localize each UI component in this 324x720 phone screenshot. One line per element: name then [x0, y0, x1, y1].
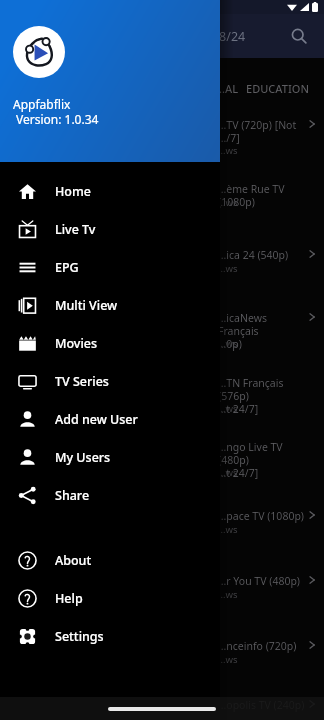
button[interactable]: …pace TV (1080p): [213, 508, 324, 552]
staticText: TV Series: [55, 373, 109, 390]
staticText: ...AL: [216, 81, 239, 96]
staticText: …ws: [218, 337, 238, 350]
staticText: …ws: [218, 144, 238, 157]
staticText: …icaNews Français …0p): [218, 311, 306, 351]
staticText: …TN Français (576p) …t 24/7]: [218, 376, 306, 416]
button[interactable]: About: [0, 541, 220, 579]
button[interactable]: …ngo Live TV (480p) …t 24/7]: [213, 439, 324, 483]
staticText: …ngo Live TV (480p) …t 24/7]: [218, 440, 306, 480]
staticText: …r You TV (480p): [218, 574, 306, 588]
button[interactable]: …opolis TV (240p): [213, 697, 324, 720]
staticText: …ème Rue TV (1080p): [218, 182, 306, 209]
staticText: Movies: [55, 335, 98, 352]
button[interactable]: Help: [0, 579, 220, 617]
staticText: …ws: [218, 653, 238, 666]
button[interactable]: …TV (720p) [Not …/7]: [213, 117, 324, 161]
staticText: …ws: [218, 196, 238, 209]
button[interactable]: EPG: [0, 248, 220, 286]
staticText: …pace TV (1080p): [218, 509, 306, 523]
staticText: …ws: [218, 402, 238, 415]
button[interactable]: Multi View: [0, 286, 220, 324]
staticText: Help: [55, 590, 83, 607]
button[interactable]: My Users: [0, 438, 220, 476]
button[interactable]: …ica 24 (540p): [213, 247, 324, 291]
staticText: Add new User: [55, 411, 138, 428]
staticText: 18/08/24: [193, 28, 246, 45]
staticText: …ws: [218, 523, 238, 536]
staticText: Home: [55, 183, 92, 200]
staticText: Settings: [55, 628, 104, 645]
staticText: About: [55, 552, 92, 569]
staticText: AppFab Flix: [81, 26, 164, 46]
staticText: Version: 1.0.34: [16, 111, 99, 127]
staticText: Share: [55, 487, 90, 504]
button[interactable]: Settings: [0, 617, 220, 655]
staticText: My Users: [55, 449, 111, 466]
staticText: Multi View: [55, 297, 118, 314]
button[interactable]: Movies: [0, 324, 220, 362]
button[interactable]: Share: [0, 476, 220, 514]
staticText: EDUCATION: [246, 81, 309, 96]
button[interactable]: …r You TV (480p): [213, 573, 324, 617]
button[interactable]: TV Series: [0, 362, 220, 400]
staticText: …ws: [218, 588, 238, 601]
button[interactable]: Live Tv: [0, 210, 220, 248]
button[interactable]: …nceinfo (720p): [213, 638, 324, 682]
staticText: …ica 24 (540p): [218, 248, 306, 262]
staticText: Live Tv: [55, 221, 96, 238]
button[interactable]: EDUCATION: [243, 78, 312, 99]
button[interactable]: Back: [4, 16, 44, 56]
staticText: EPG: [55, 259, 79, 276]
staticText: …ws: [218, 466, 238, 479]
button[interactable]: …TN Français (576p) …t 24/7]: [213, 375, 324, 419]
button[interactable]: Add new User: [0, 400, 220, 438]
button[interactable]: …ème Rue TV (1080p): [213, 181, 324, 225]
staticText: Appfabflix: [13, 96, 71, 112]
button[interactable]: Home: [0, 172, 220, 210]
staticText: …TV (720p) [Not …/7]: [218, 118, 306, 145]
button[interactable]: Search: [280, 17, 318, 55]
button[interactable]: …icaNews Français …0p): [213, 310, 324, 354]
staticText: …nceinfo (720p): [218, 639, 306, 653]
staticText: …ws: [218, 262, 238, 275]
